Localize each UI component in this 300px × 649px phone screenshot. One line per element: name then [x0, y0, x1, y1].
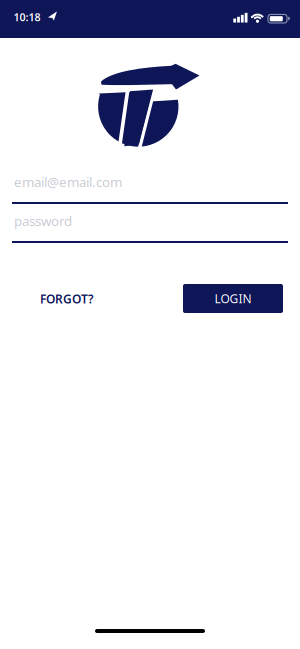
staticText: 10:18 [13, 10, 40, 24]
staticText: FORGOT? [40, 291, 94, 307]
staticText: password [14, 212, 72, 230]
button[interactable]: LOGIN [183, 284, 283, 313]
staticText: email@email.com [14, 173, 122, 191]
staticText: LOGIN [214, 290, 251, 306]
button[interactable]: Password [12, 208, 288, 238]
button[interactable]: FORGOT? [38, 287, 96, 311]
button[interactable]: Email [12, 172, 288, 202]
